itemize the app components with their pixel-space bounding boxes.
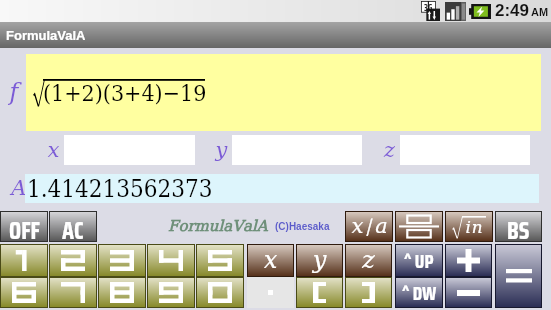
staticText: 𝑧 [382,140,397,161]
staticText: 𝑧 [360,249,377,273]
button[interactable]: AC [49,211,97,242]
other: 1 [12,250,36,271]
button[interactable]: 𝑖𝑛 [445,211,493,242]
button[interactable] [345,277,392,308]
button[interactable]: 3 [98,244,146,277]
staticText: FormulaValA [168,219,268,234]
staticText: 𝑥 [46,140,61,161]
button[interactable] [296,277,343,308]
button[interactable]: BS [495,211,542,242]
staticText: 𝐴 [8,178,26,199]
button[interactable]: Fraction [395,211,443,242]
staticText: AM [531,6,549,18]
staticText: (C)Haesaka [275,221,330,232]
button[interactable]: ^ UP [395,244,443,277]
staticText: 𝑦 [310,249,329,273]
button[interactable]: ^ DW [395,277,443,308]
staticText: 𝑓 [6,81,24,105]
staticText: 𝑥 [262,249,279,273]
other: 0 [208,282,232,303]
button[interactable]: OFF [0,211,48,242]
button[interactable]: 𝑥/𝑎 [345,211,393,242]
button[interactable]: 0 [196,277,244,308]
staticText: (1+2)(3+4)−19 [43,80,207,105]
button[interactable]: 4 [147,244,195,277]
staticText: 1.414213562373 [27,175,213,203]
button[interactable]: 8 [98,277,146,308]
button[interactable]: 𝑧 [345,244,392,277]
other: 4 [159,250,183,271]
other: 2 [61,250,85,271]
button[interactable]: 5 [196,244,244,277]
other: 5 [208,250,232,271]
staticText: FormulaValA [6,28,86,43]
other: 3 [110,250,134,271]
staticText: BS [507,212,530,241]
button[interactable]: Decimal point [247,277,294,308]
button[interactable]: 7 [49,277,97,308]
staticText: 𝑦 [213,140,230,161]
staticText: ^ DW [402,278,437,307]
other: 7 [61,282,85,303]
button[interactable]: 2 [49,244,97,277]
other: 6 [12,282,36,303]
other: 8 [110,282,134,303]
staticText: 3G [424,1,433,12]
staticText: ^ UP [404,246,434,276]
button[interactable]: 1 [0,244,48,277]
button[interactable]: Minus [445,277,492,308]
button[interactable]: 𝑦 [296,244,343,277]
other: 9 [159,282,183,303]
staticText: AC [62,212,84,241]
button[interactable]: Equals [495,244,542,308]
staticText: 𝑥/𝑎 [350,216,389,237]
button[interactable]: 6 [0,277,48,308]
button[interactable]: 𝑥 [247,244,294,277]
staticText: 𝑖𝑛 [465,220,483,237]
button[interactable]: Plus [445,244,492,277]
button[interactable]: 9 [147,277,195,308]
staticText: OFF [9,212,40,241]
staticText: 2:49 [495,1,530,20]
